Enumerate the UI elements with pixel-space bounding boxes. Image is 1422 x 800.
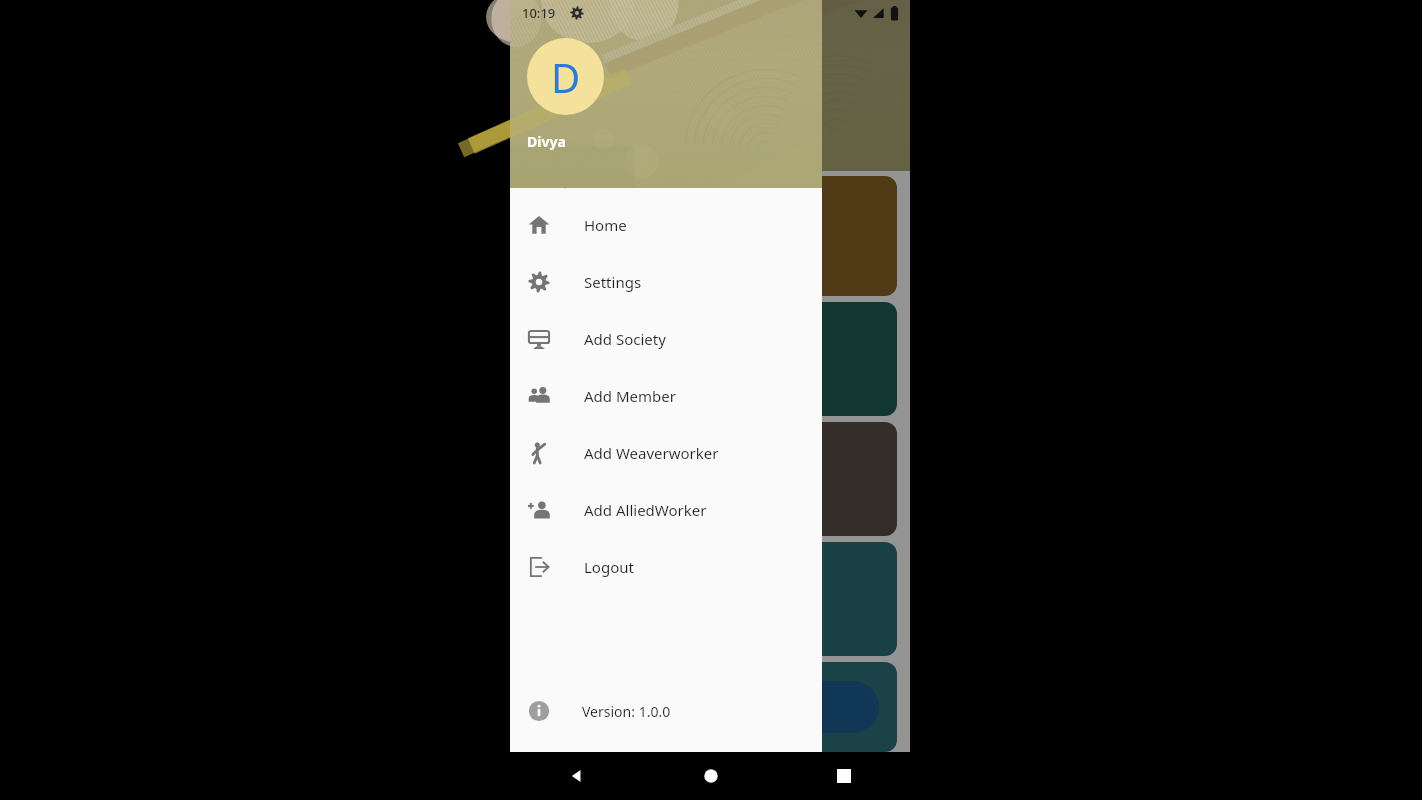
staticText: Add Society: [666, 696, 755, 718]
staticText: Version: 1.0.0: [582, 702, 671, 721]
staticText: View Details: [526, 119, 623, 142]
button[interactable]: [523, 302, 897, 416]
staticText: Upload Data: [526, 54, 626, 77]
button[interactable]: Back: [510, 752, 644, 800]
button[interactable]: WEAVERWORKERS: [523, 542, 897, 656]
button[interactable]: Add AlliedWorker: [510, 481, 822, 538]
button[interactable]: Home: [644, 752, 777, 800]
button[interactable]: Add Society: [523, 662, 897, 752]
button[interactable]: Logout: [510, 538, 822, 595]
staticText: D: [551, 50, 581, 104]
staticText: Home: [584, 215, 627, 235]
button[interactable]: Add Society: [510, 310, 822, 367]
button[interactable]: Add Society: [541, 681, 879, 733]
staticText: 10:19: [522, 4, 556, 22]
button[interactable]: [523, 176, 897, 296]
button[interactable]: Version: 1.0.0: [510, 682, 822, 740]
staticText: Add AlliedWorker: [584, 500, 707, 520]
staticText: Add Member: [584, 386, 676, 406]
staticText: Add Society: [584, 329, 666, 349]
staticText: Add Weaverworker: [584, 443, 719, 463]
button[interactable]: Add Weaverworker: [510, 424, 822, 481]
button[interactable]: Home: [510, 196, 822, 253]
button[interactable]: Add Member: [510, 367, 822, 424]
button[interactable]: Settings: [510, 253, 822, 310]
staticText: Settings: [584, 272, 642, 292]
staticText: Logout: [584, 557, 634, 577]
staticText: Divya: [527, 132, 566, 151]
button[interactable]: Recent apps: [777, 752, 910, 800]
button[interactable]: [523, 422, 897, 536]
